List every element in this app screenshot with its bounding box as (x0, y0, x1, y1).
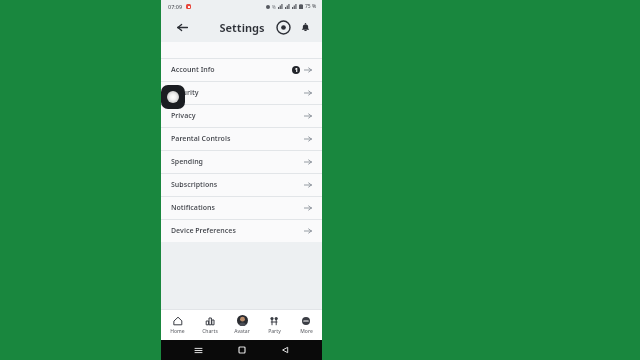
staticText: Home (170, 328, 185, 335)
button[interactable]: Security (161, 82, 322, 104)
staticText: 1 (295, 67, 298, 74)
staticText: Parental Controls (171, 134, 304, 144)
staticText: 07:09 (168, 3, 183, 10)
button[interactable]: Home (235, 343, 249, 357)
staticText: Security (171, 88, 304, 98)
staticText: Spending (171, 157, 304, 167)
button[interactable]: Back (173, 18, 191, 36)
staticText: Settings (219, 20, 265, 35)
button[interactable]: Party (258, 310, 290, 340)
staticText: Account Info (171, 65, 292, 75)
button[interactable]: Recent apps (191, 343, 205, 357)
staticText: Avatar (234, 328, 250, 335)
button[interactable]: Notifications (161, 197, 322, 219)
staticText: Privacy (171, 111, 304, 121)
staticText: 75 % (305, 3, 317, 10)
button[interactable]: Screen recorder (161, 85, 185, 109)
button[interactable]: Subscriptions (161, 174, 322, 196)
button[interactable]: Device Preferences (161, 220, 322, 242)
button[interactable]: Back (278, 343, 292, 357)
button[interactable]: Charts (194, 310, 226, 340)
staticText: Device Preferences (171, 226, 304, 236)
staticText: Notifications (171, 203, 304, 213)
staticText: Party (268, 328, 281, 335)
button[interactable]: Record (275, 19, 291, 35)
button[interactable]: Parental Controls (161, 128, 322, 150)
button[interactable]: Home (161, 310, 194, 340)
button[interactable]: Notifications (297, 19, 313, 35)
staticText: Charts (202, 328, 218, 335)
staticText: Subscriptions (171, 180, 304, 190)
button[interactable]: Avatar (226, 310, 258, 340)
staticText: More (300, 328, 313, 335)
button[interactable]: Spending (161, 151, 322, 173)
button[interactable]: Account Info (161, 59, 322, 81)
staticText: % (272, 4, 276, 10)
button[interactable]: Privacy (161, 105, 322, 127)
button[interactable]: More (290, 310, 322, 340)
